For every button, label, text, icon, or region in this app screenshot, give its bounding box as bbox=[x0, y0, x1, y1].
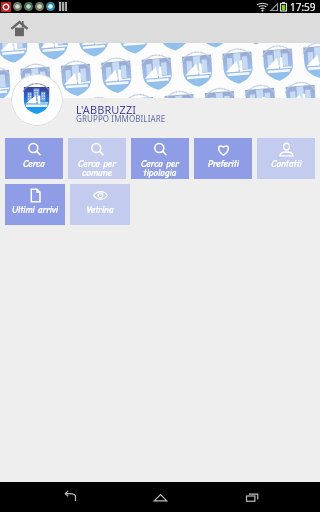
staticText: GRUPPO IMMOBILIARE bbox=[76, 113, 166, 124]
button[interactable]: Home bbox=[137, 482, 183, 512]
button[interactable]: Vetrina bbox=[70, 184, 130, 225]
button[interactable]: Cerca per tipologia bbox=[131, 138, 189, 179]
button[interactable]: Cerca per comune bbox=[68, 138, 126, 179]
button[interactable]: Contatti bbox=[257, 138, 315, 179]
staticText: Cerca per comune bbox=[78, 159, 116, 179]
button[interactable]: Cerca bbox=[5, 138, 63, 179]
staticText: Ultimi arrivi bbox=[12, 205, 58, 215]
staticText: L'ABBRUZZI bbox=[76, 102, 137, 117]
staticText: Cerca per tipologia bbox=[141, 159, 179, 179]
staticText: Cerca bbox=[23, 159, 45, 169]
button[interactable]: Recent apps bbox=[229, 482, 275, 512]
staticText: Vetrina bbox=[86, 205, 114, 215]
button[interactable]: Ultimi arrivi bbox=[5, 184, 65, 225]
staticText: Preferiti bbox=[208, 159, 239, 169]
staticText: 17:59 bbox=[290, 0, 316, 13]
button[interactable]: Home bbox=[5, 13, 35, 43]
button[interactable]: Back bbox=[46, 482, 92, 512]
staticText: Contatti bbox=[271, 159, 302, 169]
button[interactable]: Preferiti bbox=[194, 138, 252, 179]
